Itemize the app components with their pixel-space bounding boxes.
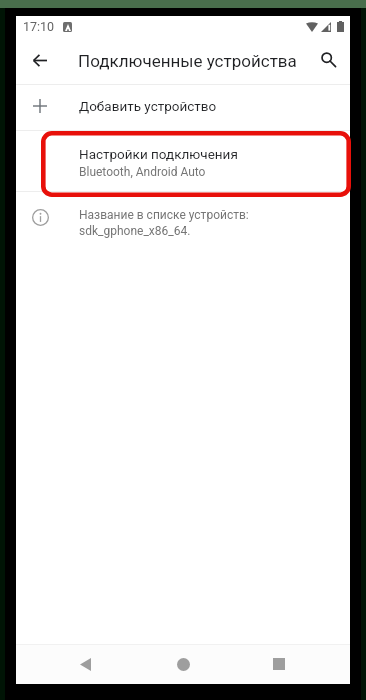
button[interactable]: Back	[65, 644, 106, 684]
staticText: sdk_gphone_x86_64.	[79, 224, 191, 238]
staticText: Настройки подключения	[79, 146, 238, 162]
staticText: 17:10	[23, 19, 55, 34]
button[interactable]: Home	[163, 644, 204, 684]
button[interactable]: Recent apps	[258, 644, 299, 684]
staticText: Название в списке устройств:	[79, 208, 249, 222]
button[interactable]: Название в списке устройств:	[16, 194, 350, 248]
staticText: Добавить устройство	[79, 98, 217, 114]
staticText: Подключенные устройства	[78, 51, 297, 71]
button[interactable]: Настройки подключения	[16, 131, 350, 191]
button[interactable]: Search	[306, 37, 350, 81]
button[interactable]: Navigate up	[16, 38, 64, 82]
staticText: Bluetooth, Android Auto	[79, 165, 206, 179]
button[interactable]: Добавить устройство	[16, 83, 350, 128]
